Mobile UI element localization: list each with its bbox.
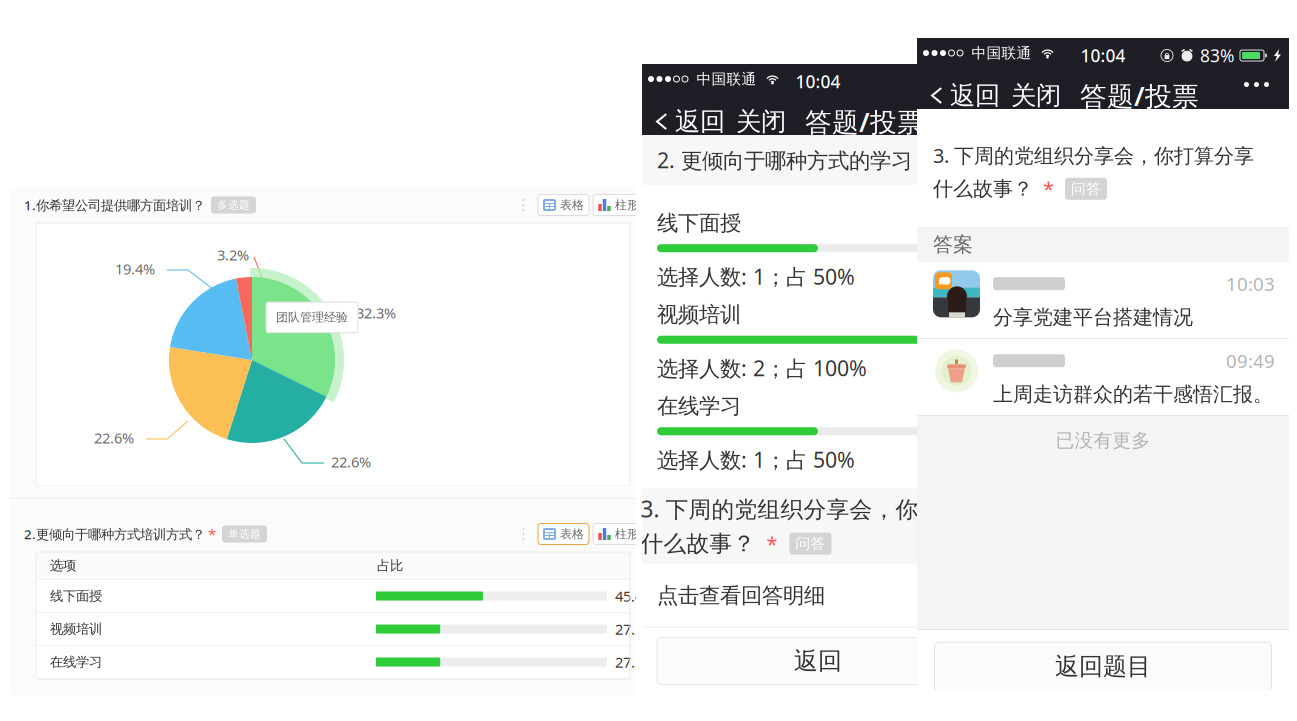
staticText: 柱形 — [615, 527, 639, 541]
staticText: 分享党建平台搭建情况 — [993, 305, 1193, 330]
staticText: 32.3% — [356, 303, 396, 322]
staticText: 视频培训 — [50, 621, 102, 637]
button[interactable]: More options — [1234, 72, 1279, 97]
staticText: * — [766, 530, 777, 557]
staticText: * — [942, 147, 953, 173]
staticText: 答案 — [933, 232, 973, 257]
staticText: 返回 — [950, 80, 1000, 111]
staticText: 中国联通 — [971, 44, 1031, 62]
staticText: 什么故事？ — [640, 530, 755, 557]
button[interactable]: 关闭 — [725, 101, 786, 142]
staticText: 10:04 — [795, 70, 840, 93]
staticText: 22.6% — [94, 428, 134, 447]
staticText: 10:04 — [1080, 44, 1125, 67]
staticText: 关闭 — [1011, 80, 1061, 111]
staticText: 1.你希望公司提供哪方面培训？ — [24, 196, 205, 214]
button[interactable]: 返回题目 — [934, 642, 1271, 691]
staticText: 返回 — [794, 646, 842, 676]
staticText: 选项 — [50, 557, 76, 574]
staticText: 在线学习 — [657, 393, 741, 419]
staticText: 中国联通 — [696, 70, 756, 88]
staticText: 线下面授 — [50, 588, 102, 604]
staticText: 多选题 — [217, 198, 250, 211]
staticText: ⋮ — [516, 526, 531, 542]
staticText: 45.45% — [615, 586, 663, 606]
staticText: 答题/投票 — [1080, 78, 1199, 113]
button[interactable]: 返回 — [654, 101, 725, 142]
staticText: 线下面授 — [657, 210, 741, 236]
staticText: 关闭 — [736, 106, 786, 137]
staticText: 09:49 — [1226, 348, 1275, 373]
staticText: 2. 更倾向于哪种方式的学习？ — [657, 146, 933, 174]
button[interactable]: 返回 — [929, 75, 1000, 116]
staticText: 返回题目 — [1055, 652, 1151, 681]
staticText: 视频培训 — [657, 301, 741, 328]
staticText: 3. 下周的党组织分享会，你打算分享 — [640, 494, 1010, 524]
button[interactable]: 柱形 — [593, 523, 644, 544]
staticText: 表格 — [560, 527, 584, 541]
button[interactable]: 点击查看回答明细 — [642, 565, 994, 627]
staticText: 选择人数: 1；占 50% — [657, 445, 855, 474]
staticText: 已没有更多 — [1055, 429, 1150, 452]
staticText: 返回 — [675, 106, 725, 137]
staticText: * — [208, 524, 216, 544]
staticText: 柱形 — [615, 198, 639, 212]
staticText: 10:03 — [1226, 271, 1275, 296]
button[interactable]: 关闭 — [1000, 75, 1061, 116]
staticText: 问答 — [795, 535, 825, 553]
staticText: 27.27% — [615, 619, 663, 639]
staticText: 上周走访群众的若干感悟汇报。 — [993, 382, 1273, 407]
staticText: 问答 — [1071, 180, 1101, 198]
staticText: 19.4% — [115, 259, 155, 278]
staticText: * — [1043, 175, 1054, 202]
button[interactable]: 柱形 — [593, 194, 644, 215]
staticText: 在线学习 — [50, 654, 102, 670]
staticText: 选择人数: 2；占 100% — [657, 354, 867, 382]
staticText: 答题/投票 — [805, 104, 924, 139]
staticText: 点击查看回答明细 — [657, 582, 825, 609]
staticText: ⋮ — [516, 197, 531, 213]
button[interactable]: 表格 — [538, 523, 589, 544]
button[interactable]: 返回 — [657, 638, 979, 685]
staticText: 3.2% — [217, 245, 249, 264]
staticText: 22.6% — [331, 452, 371, 471]
staticText: 表格 — [560, 198, 584, 212]
staticText: 什么故事？ — [933, 176, 1033, 201]
staticText: 占比 — [377, 557, 403, 574]
staticText: 单选题 — [228, 527, 261, 540]
staticText: 团队管理经验 — [276, 310, 348, 325]
staticText: 3. 下周的党组织分享会，你打算分享 — [933, 142, 1254, 168]
staticText: 2.更倾向于哪种方式培训方式？ — [24, 525, 205, 543]
staticText: 27.27% — [615, 652, 663, 672]
staticText: 83% — [1200, 44, 1234, 67]
staticText: 选择人数: 1；占 50% — [657, 262, 855, 290]
button[interactable]: 表格 — [538, 194, 589, 215]
